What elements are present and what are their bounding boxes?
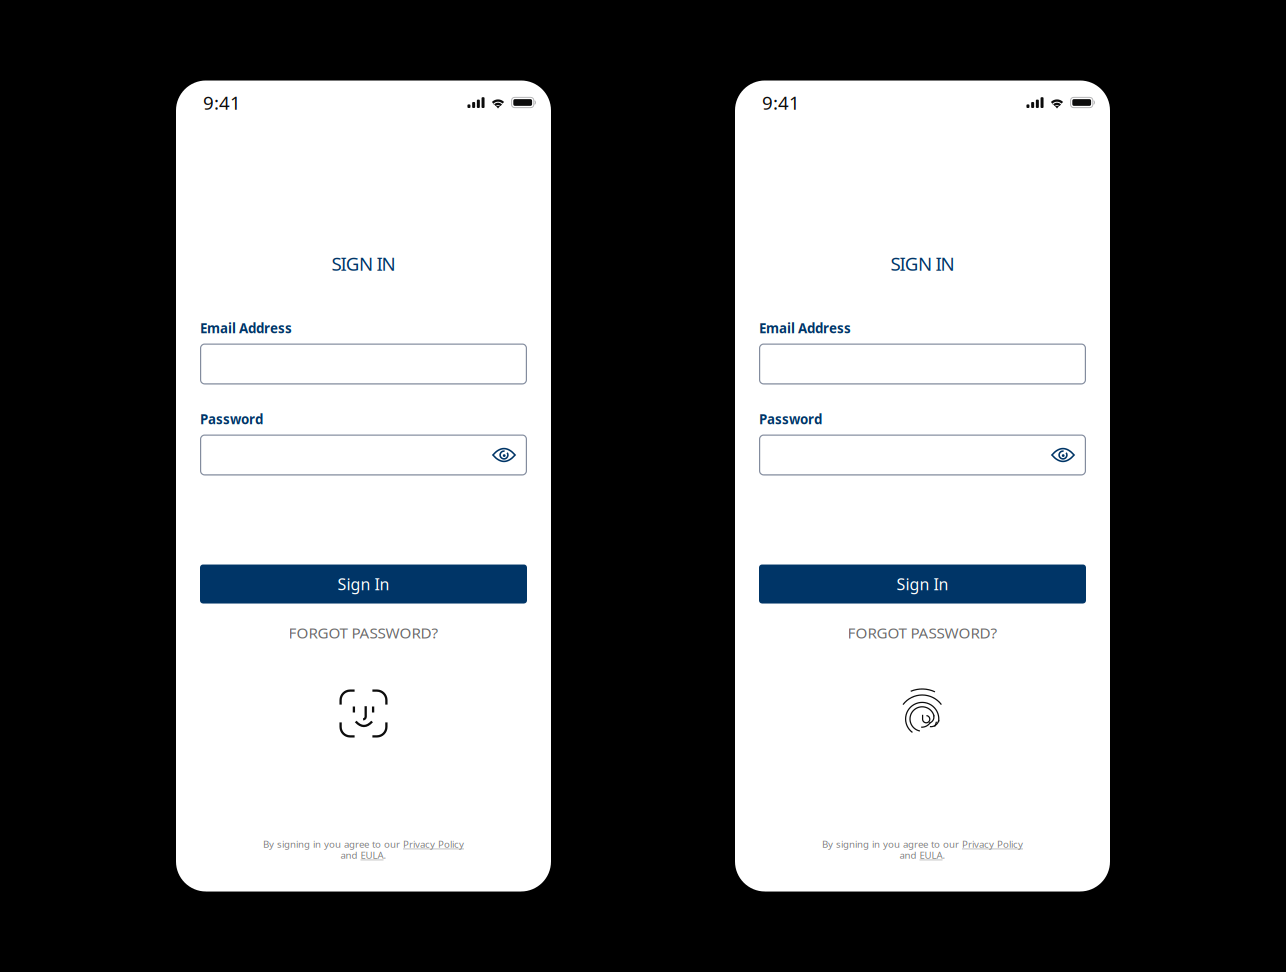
button[interactable]: Privacy Policy [403,838,464,850]
button[interactable]: EULA [919,849,942,861]
staticText: Email Address [759,319,851,337]
staticText: EULA [919,849,942,861]
button[interactable]: Show password [492,435,527,475]
staticText: Sign In [896,573,948,595]
button[interactable]: FORGOT PASSWORD? [847,626,997,638]
button[interactable]: FORGOT PASSWORD? [288,626,438,638]
button[interactable]: Sign In [200,564,527,603]
staticText: By signing in you agree to our [822,838,962,850]
staticText: FORGOT PASSWORD? [288,622,438,643]
staticText: Privacy Policy [403,838,464,850]
staticText: 9:41 [762,90,800,115]
button[interactable]: Show password [1051,435,1086,475]
button[interactable]: EULA [360,849,383,861]
staticText: . [383,849,386,861]
staticText: SIGN IN [890,251,955,276]
button[interactable]: Sign In [759,564,1086,603]
staticText: Email Address [200,319,292,337]
staticText: By signing in you agree to our [263,838,403,850]
staticText: . [942,849,945,861]
button[interactable]: Password [200,435,492,474]
button[interactable]: Sign in with Face ID [339,689,387,737]
button[interactable]: Privacy Policy [962,838,1023,850]
button[interactable]: Sign in with Touch ID [904,689,941,739]
staticText: and [340,849,360,861]
staticText: SIGN IN [331,251,396,276]
button[interactable]: Email Address [759,343,1086,384]
staticText: FORGOT PASSWORD? [847,622,997,643]
staticText: EULA [360,849,383,861]
staticText: 9:41 [203,90,241,115]
staticText: and [899,849,919,861]
staticText: Password [759,410,822,428]
staticText: Sign In [337,573,389,595]
staticText: Password [200,410,263,428]
staticText: Privacy Policy [962,838,1023,850]
button[interactable]: Email Address [200,343,527,384]
button[interactable]: Password [759,435,1051,474]
